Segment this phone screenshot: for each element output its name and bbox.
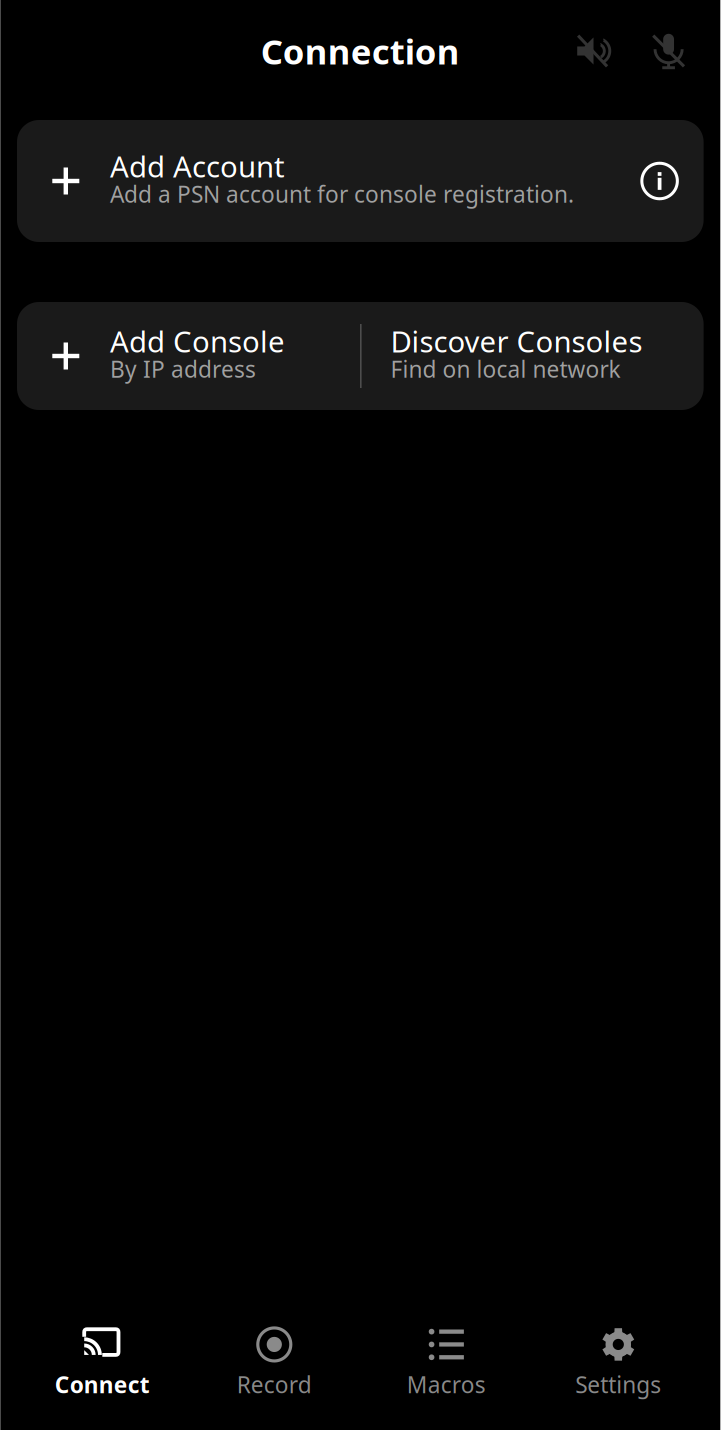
staticText: Macros	[407, 1369, 486, 1399]
staticText: By IP address	[110, 354, 256, 384]
button[interactable]: Connect	[16, 1304, 188, 1410]
button[interactable]: Add Account	[17, 120, 704, 242]
button[interactable]: Add Console	[17, 302, 360, 410]
staticText: Connect	[55, 1369, 150, 1399]
staticText: Settings	[575, 1369, 661, 1399]
staticText: Find on local network	[391, 354, 621, 384]
button[interactable]: Microphone muted	[641, 23, 697, 79]
staticText: Connection	[261, 28, 460, 74]
button[interactable]: Settings	[532, 1304, 704, 1410]
staticText: Record	[237, 1369, 312, 1399]
button[interactable]: Discover Consoles	[362, 302, 704, 410]
staticText: Add a PSN account for console registrati…	[110, 179, 574, 209]
staticText: Add Account	[110, 146, 285, 185]
button[interactable]: Macros	[360, 1304, 532, 1410]
staticText: Discover Consoles	[391, 321, 643, 360]
button[interactable]: Audio muted	[565, 23, 621, 79]
button[interactable]: Record	[188, 1304, 360, 1410]
staticText: Add Console	[110, 321, 285, 360]
